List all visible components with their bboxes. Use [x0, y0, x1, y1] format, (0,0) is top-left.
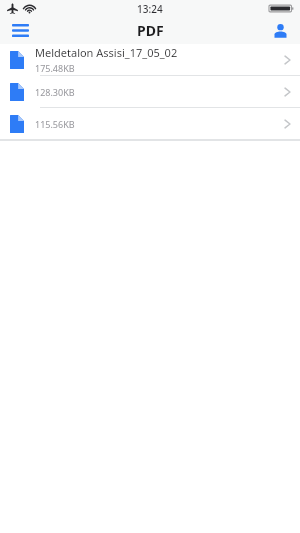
staticText: 13:24	[137, 2, 163, 16]
button[interactable]: Open navigation menu	[0, 17, 40, 44]
staticText: 175.48KB	[35, 62, 75, 74]
staticText: PDF	[137, 21, 164, 40]
staticText: Meldetalon Assisi_17_05_02	[35, 45, 178, 60]
button[interactable]: 128.30KB	[0, 76, 300, 108]
staticText: 128.30KB	[35, 86, 75, 98]
button[interactable]: Meldetalon Assisi_17_05_02	[0, 44, 300, 76]
staticText: 115.56KB	[35, 118, 75, 130]
button[interactable]: 115.56KB	[0, 108, 300, 140]
button[interactable]: Account	[260, 17, 300, 44]
